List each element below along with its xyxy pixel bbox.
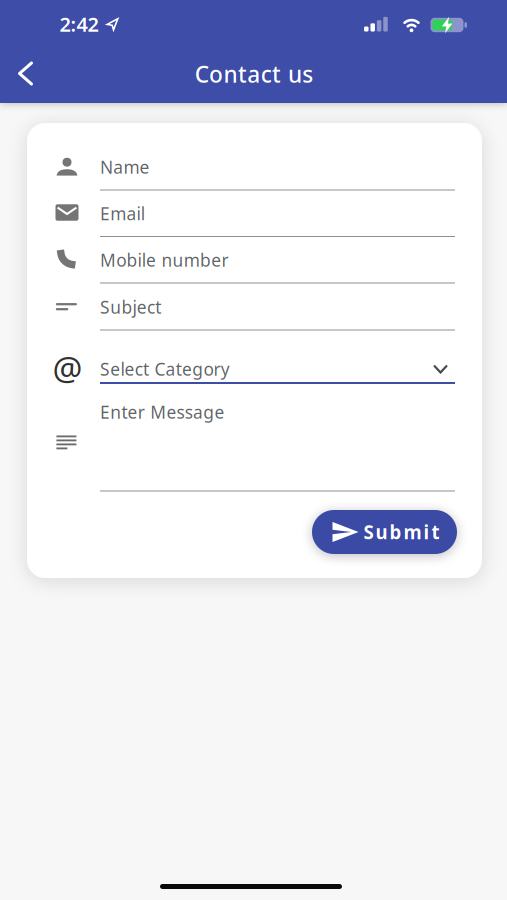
button[interactable]: Email [100,196,455,242]
staticText: S u b m i t [363,520,439,544]
button[interactable]: Enter Message [100,393,455,493]
staticText: @ [52,346,82,390]
staticText: Enter Message [100,400,224,423]
button[interactable]: S u b m i t [312,510,457,554]
staticText: Select Category [100,357,230,380]
button[interactable]: Select Category [100,355,455,383]
staticText: Contact us [195,59,313,89]
staticText: Subject [100,295,161,318]
button[interactable]: Back [4,51,48,95]
staticText: Email [100,202,145,225]
button[interactable]: Name [100,150,455,196]
button[interactable]: Subject [100,290,455,336]
staticText: Name [100,155,150,178]
staticText: 2:42 [59,11,98,37]
staticText: Mobile number [100,248,228,271]
button[interactable]: Mobile number [100,243,455,289]
